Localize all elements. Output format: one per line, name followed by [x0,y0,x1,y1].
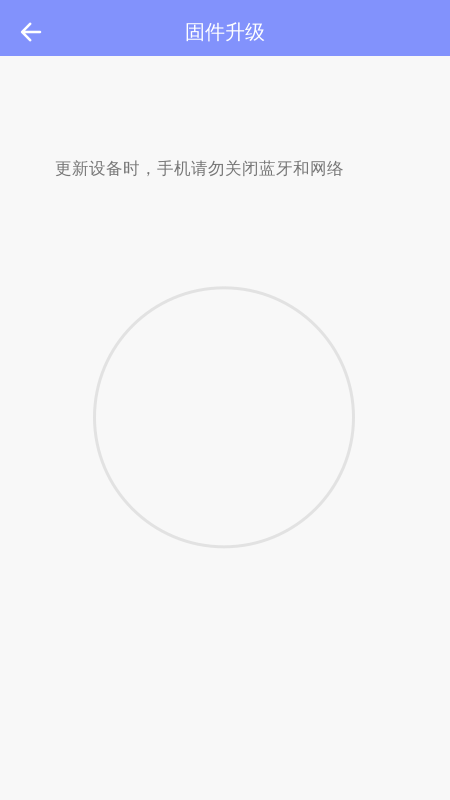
staticText: 更新设备时，手机请勿关闭蓝牙和网络 [55,158,344,179]
staticText: 固件升级 [185,19,265,45]
button[interactable]: 返回 [9,10,53,54]
